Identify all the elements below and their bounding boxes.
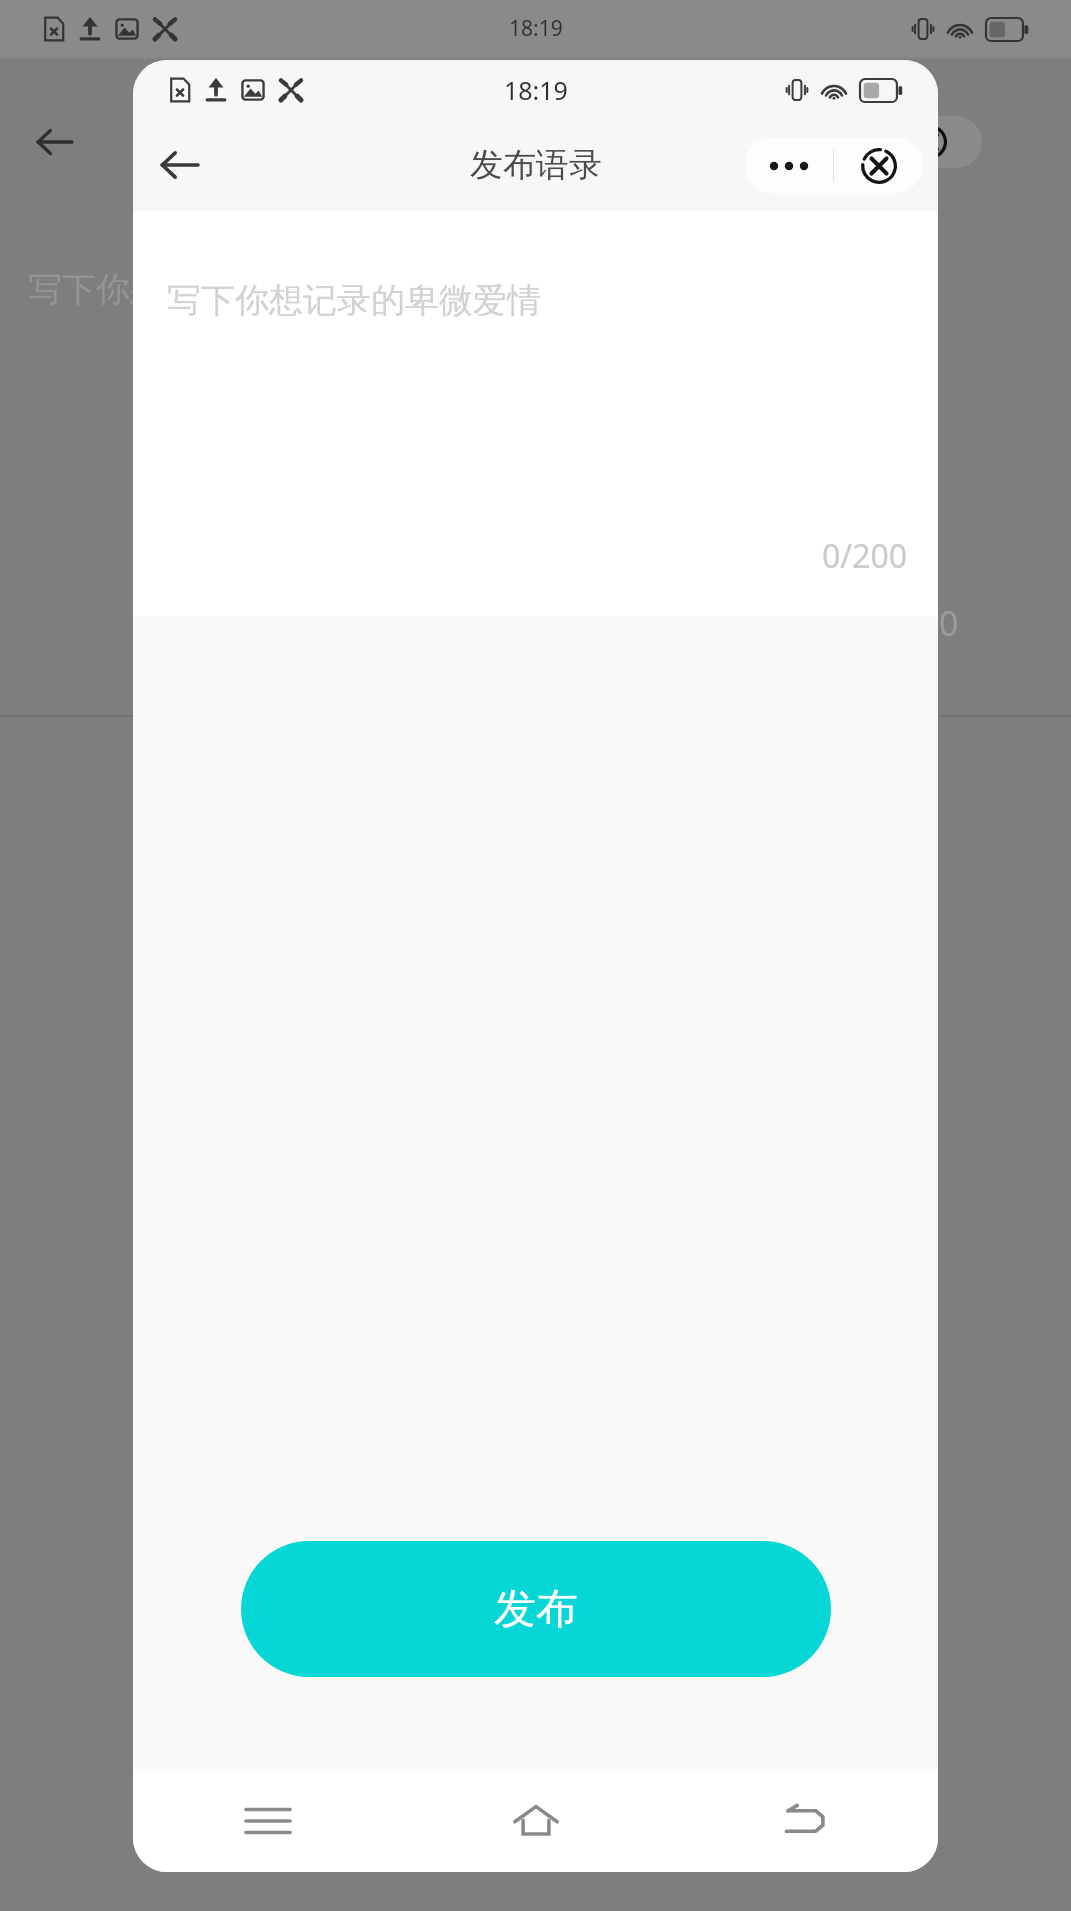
button[interactable]: More options xyxy=(745,138,833,193)
staticText: 发布语录 xyxy=(470,144,602,186)
button[interactable]: Back xyxy=(22,110,86,174)
button[interactable]: 写下你想记录的卑微爱情 xyxy=(133,211,938,616)
staticText: 18:19 xyxy=(509,14,563,43)
button[interactable]: 发布 xyxy=(241,1541,831,1677)
staticText: 发布 xyxy=(494,1583,578,1636)
button[interactable]: Recent apps xyxy=(133,1769,402,1872)
button[interactable]: Close xyxy=(890,116,982,168)
staticText: 0/200 xyxy=(822,534,908,578)
staticText: 18:19 xyxy=(504,73,568,107)
staticText: 0/200 xyxy=(868,600,959,646)
staticText: 写下你想记录的卑微爱情 xyxy=(28,268,402,311)
button[interactable]: Close xyxy=(834,138,923,193)
button[interactable]: Home xyxy=(402,1769,670,1872)
button[interactable]: Back xyxy=(670,1769,938,1872)
button[interactable]: Back xyxy=(143,129,215,201)
staticText: 写下你想记录的卑微爱情 xyxy=(167,279,541,322)
